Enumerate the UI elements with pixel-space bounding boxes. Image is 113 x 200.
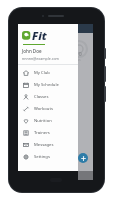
staticText: John Doe [22, 48, 42, 54]
staticText: Trainers [34, 130, 50, 136]
staticText: Nutrition [34, 118, 52, 124]
staticText: 0.00 [70, 50, 90, 58]
button[interactable]: Settings [18, 151, 78, 163]
button[interactable]: Trainers [18, 127, 78, 139]
staticText: Fit [32, 28, 47, 43]
button[interactable]: Nutrition [18, 115, 78, 127]
button[interactable]: Add activity [78, 153, 88, 163]
button[interactable]: My Club [18, 67, 78, 79]
staticText: Workouts [34, 106, 53, 112]
button[interactable]: Workouts [18, 103, 78, 115]
button[interactable]: Classes [18, 91, 78, 103]
staticText: Messages [34, 142, 54, 148]
button[interactable]: Messages [18, 139, 78, 151]
staticText: steps [72, 57, 90, 62]
staticText: Classes [34, 94, 49, 100]
staticText: My Club [34, 70, 50, 76]
button[interactable]: My Schedule [18, 79, 78, 91]
staticText: nnnnn@example.com [22, 56, 59, 61]
staticText: Settings [34, 154, 50, 160]
staticText: My Schedule [34, 82, 59, 88]
